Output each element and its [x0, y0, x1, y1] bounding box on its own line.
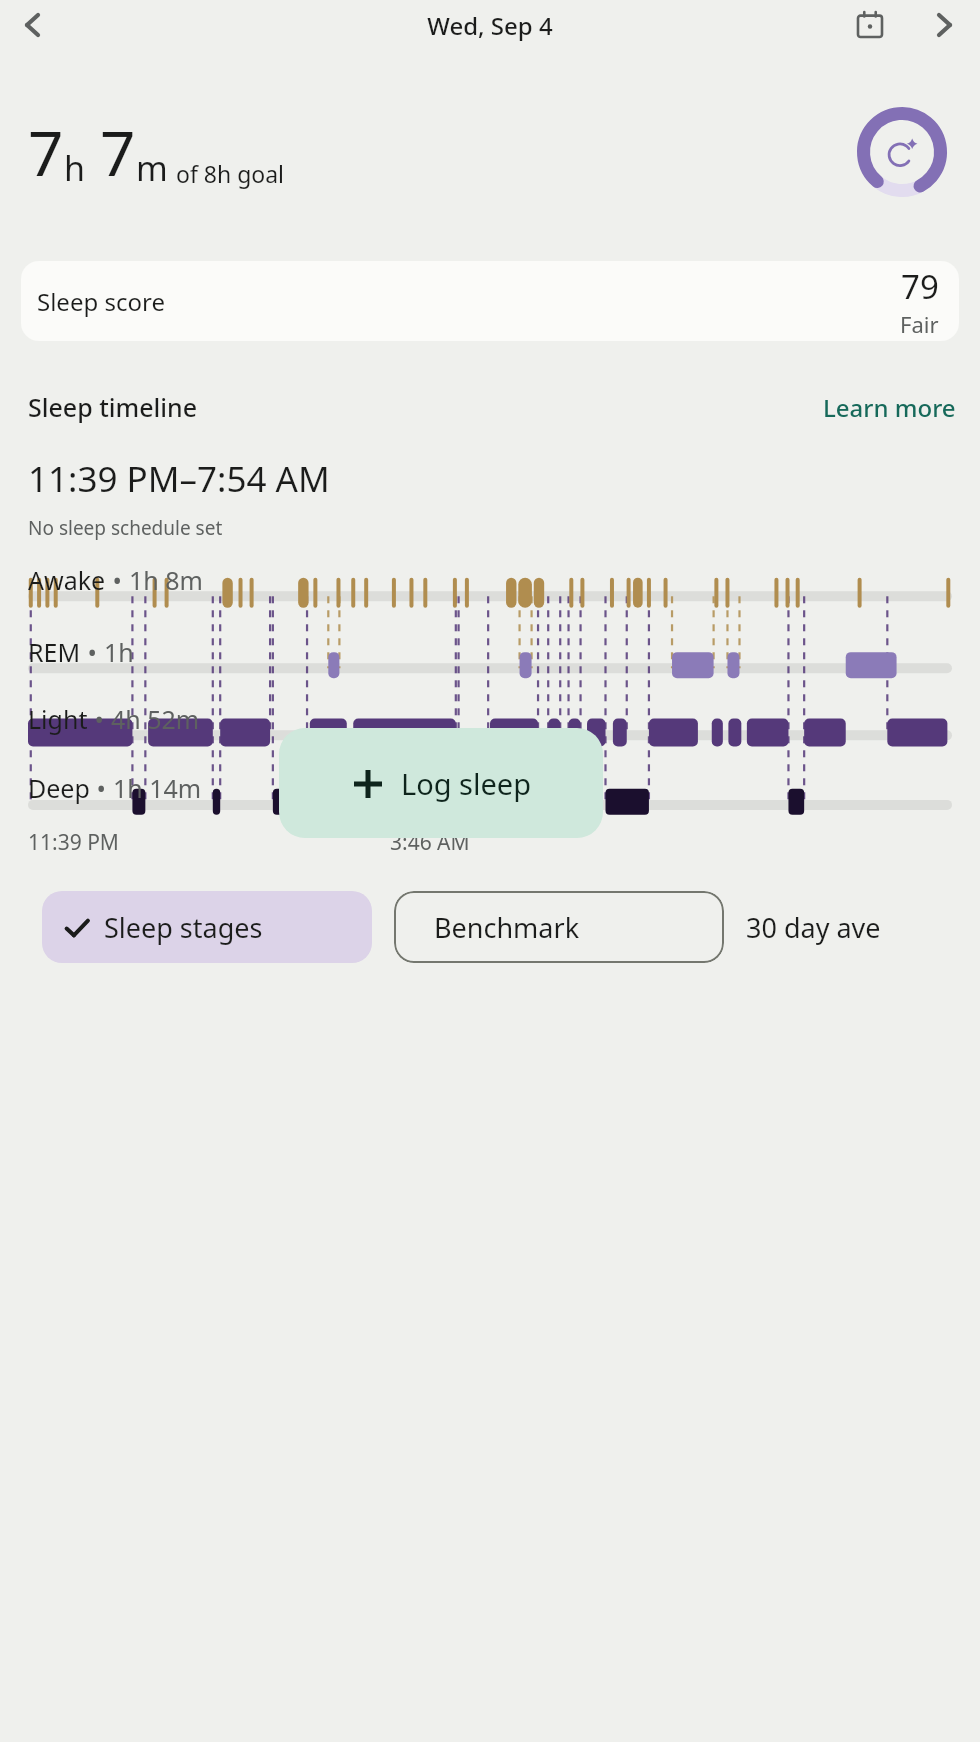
staticText: Deep [28, 771, 90, 805]
staticText: 7 [100, 110, 136, 194]
staticText: 3:46 AM [390, 828, 470, 857]
button[interactable]: Benchmark [394, 891, 724, 963]
button[interactable]: Calendar [848, 3, 892, 47]
staticText: Awake [28, 563, 106, 597]
button[interactable]: Learn more [823, 391, 956, 424]
staticText: 1h 14m [113, 771, 202, 805]
staticText: 1h [104, 635, 134, 669]
staticText: REM [28, 635, 81, 669]
staticText: of 8h goal [176, 158, 285, 189]
staticText: 1h 8m [129, 563, 203, 597]
staticText: 4h 52m [111, 702, 200, 736]
button[interactable]: Sleep stages [42, 891, 372, 963]
staticText: No sleep schedule set [28, 515, 223, 541]
staticText: 7 [28, 110, 64, 194]
staticText: • [106, 563, 129, 597]
button[interactable]: Previous day [10, 3, 54, 47]
button[interactable]: Sleep score [21, 261, 959, 341]
staticText: 30 day ave [746, 909, 881, 946]
staticText: Sleep stages [104, 909, 263, 946]
staticText: Benchmark [434, 909, 580, 946]
staticText: Light [28, 702, 88, 736]
button[interactable]: Next day [922, 3, 966, 47]
staticText: 11:39 PM [28, 828, 119, 857]
staticText: • [88, 702, 111, 736]
staticText: Sleep score [37, 285, 165, 318]
staticText: • [81, 635, 104, 669]
staticText: h [64, 145, 86, 191]
staticText: 11:39 PM–7:54 AM [28, 455, 330, 503]
button[interactable]: Sleep goal progress [856, 106, 948, 198]
staticText: Fair [900, 309, 939, 339]
staticText: m [136, 145, 168, 191]
staticText: Log sleep [401, 764, 532, 803]
button[interactable]: Log sleep [279, 728, 603, 838]
staticText: • [90, 771, 113, 805]
staticText: Sleep timeline [28, 390, 198, 424]
staticText: 79 [901, 264, 939, 309]
staticText: Learn more [823, 391, 956, 424]
staticText: Wed, Sep 4 [427, 9, 553, 42]
